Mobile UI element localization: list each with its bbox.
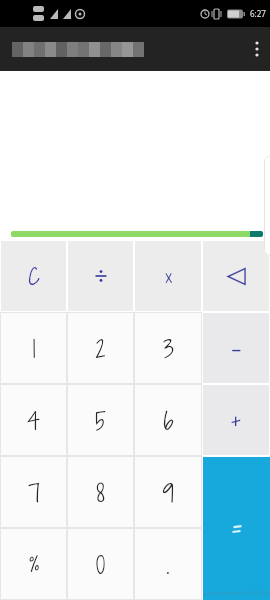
button[interactable]: % [0, 528, 67, 600]
staticText: 1 [32, 332, 36, 365]
staticText: - [231, 332, 241, 364]
button[interactable] [240, 34, 270, 64]
staticText: g.csdn.net/weixin_48642058 [203, 590, 270, 597]
button[interactable]: - [203, 313, 269, 383]
button[interactable]: 6 [134, 384, 202, 456]
staticText: 9 [162, 476, 174, 509]
button[interactable]: C [1, 241, 66, 311]
button[interactable] [203, 241, 269, 311]
staticText: 0 [96, 548, 105, 581]
staticText: 6:27 [250, 8, 266, 19]
button[interactable]: 5 [67, 384, 134, 456]
staticText: 6 [163, 404, 174, 437]
button[interactable] [68, 241, 133, 311]
button[interactable]: 1 [0, 312, 67, 384]
staticText: 3 [163, 332, 174, 365]
button[interactable]: 4 [0, 384, 67, 456]
staticText: . [166, 548, 170, 581]
button[interactable]: 7 [0, 456, 67, 528]
button[interactable] [203, 457, 270, 600]
button[interactable]: 0 [67, 528, 134, 600]
button[interactable]: 3 [134, 312, 202, 384]
button[interactable]: 8 [67, 456, 134, 528]
button[interactable]: x [135, 241, 201, 311]
button[interactable]: 2 [67, 312, 134, 384]
staticText: + [230, 404, 242, 436]
staticText: 4 [27, 404, 40, 437]
staticText: 8 [96, 476, 105, 509]
staticText: % [29, 550, 39, 579]
button[interactable]: 9 [134, 456, 202, 528]
staticText: 2 [95, 332, 106, 365]
button[interactable]: . [134, 528, 202, 600]
staticText: x [165, 264, 172, 289]
button[interactable]: + [203, 385, 269, 455]
staticText: 5 [95, 404, 106, 437]
staticText: C [28, 260, 40, 292]
staticText: 7 [28, 476, 40, 509]
